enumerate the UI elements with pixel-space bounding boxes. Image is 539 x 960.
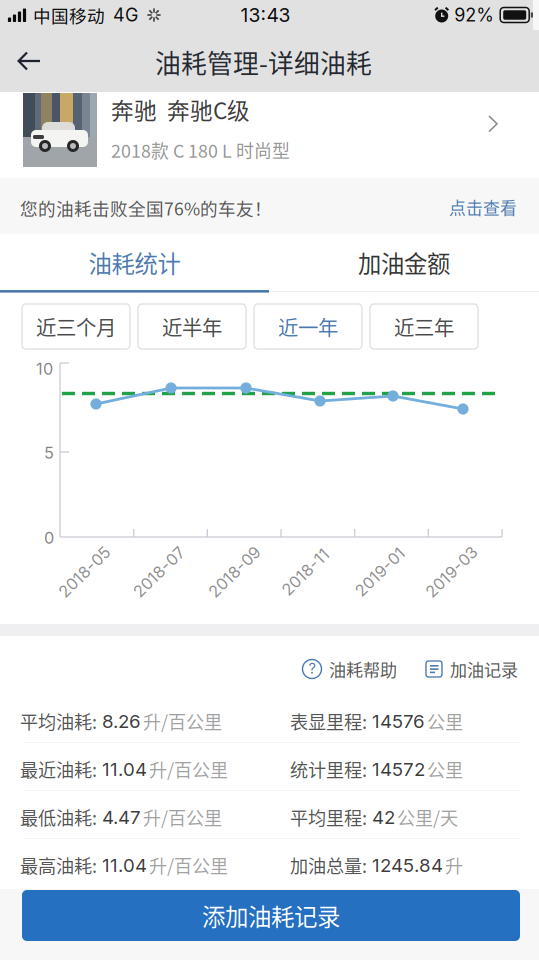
staticText: 近三个月	[36, 312, 116, 341]
staticText: 平均里程:	[290, 804, 367, 830]
staticText: 92%	[454, 4, 494, 26]
staticText: 13:43	[240, 3, 290, 27]
staticText: 最高油耗:	[20, 852, 97, 878]
staticText: 升	[445, 852, 463, 878]
staticText: 2019-03	[419, 562, 484, 582]
staticText: 近半年	[162, 312, 222, 341]
staticText: 2019-01	[349, 562, 411, 582]
button[interactable]: 加油金额	[269, 234, 539, 291]
button[interactable]: ?	[302, 654, 397, 684]
staticText: 2018-09	[202, 562, 267, 582]
staticText: 2018-11	[276, 562, 335, 582]
button[interactable]: 油耗统计	[0, 234, 269, 291]
staticText: 统计里程:	[290, 756, 367, 782]
button[interactable]: 近三个月	[22, 304, 130, 349]
staticText: 升/百公里	[149, 852, 228, 878]
staticText: 1245.84	[367, 854, 443, 876]
staticText: 42	[367, 806, 395, 828]
staticText: 升/百公里	[149, 756, 228, 782]
staticText: 公里/天	[397, 804, 458, 830]
staticText: 加油金额	[358, 246, 450, 279]
staticText: 奔驰 奔驰C级	[111, 93, 250, 126]
staticText: 10	[36, 359, 53, 379]
staticText: 11.04	[97, 854, 147, 876]
staticText: 升/百公里	[143, 708, 222, 734]
staticText: 11.04	[97, 758, 147, 780]
button[interactable]: 奔驰 奔驰C级	[0, 92, 539, 178]
button[interactable]: 近一年	[254, 304, 362, 349]
staticText: 加油总量:	[290, 852, 367, 878]
staticText: 近一年	[278, 312, 338, 341]
staticText: 您的油耗击败全国76%的车友！	[20, 195, 272, 220]
button[interactable]: 返回	[0, 30, 58, 92]
staticText: 近三年	[394, 312, 454, 341]
staticText: 4.47	[97, 806, 141, 828]
staticText: 2018-05	[52, 562, 117, 582]
button[interactable]: 近三年	[370, 304, 478, 349]
staticText: 中国移动	[33, 2, 105, 28]
staticText: 最近油耗:	[20, 756, 97, 782]
button[interactable]: 近半年	[138, 304, 246, 349]
staticText: 油耗帮助	[329, 657, 397, 681]
staticText: 4G	[113, 4, 138, 26]
button[interactable]: 加油记录	[426, 654, 518, 684]
staticText: 添加油耗记录	[202, 898, 340, 932]
staticText: 14572	[367, 758, 425, 780]
staticText: 14576	[367, 710, 425, 732]
staticText: ?	[308, 660, 315, 677]
staticText: 5	[44, 443, 54, 463]
staticText: 8.26	[97, 710, 141, 732]
staticText: 加油记录	[450, 657, 518, 681]
staticText: 油耗管理-详细油耗	[155, 43, 372, 81]
staticText: 2018-07	[127, 562, 191, 582]
staticText: 平均油耗:	[20, 708, 97, 734]
staticText: 升/百公里	[143, 804, 222, 830]
button[interactable]: 添加油耗记录	[22, 890, 520, 941]
staticText: 油耗统计	[88, 246, 180, 279]
staticText: 点击查看	[449, 195, 517, 219]
button[interactable]: 点击查看	[449, 195, 517, 219]
staticText: 0	[44, 528, 54, 548]
staticText: 表显里程:	[290, 708, 367, 734]
staticText: 2018款 C 180 L 时尚型	[111, 137, 290, 163]
staticText: 最低油耗:	[20, 804, 97, 830]
staticText: 公里	[427, 756, 463, 782]
staticText: 公里	[427, 708, 463, 734]
